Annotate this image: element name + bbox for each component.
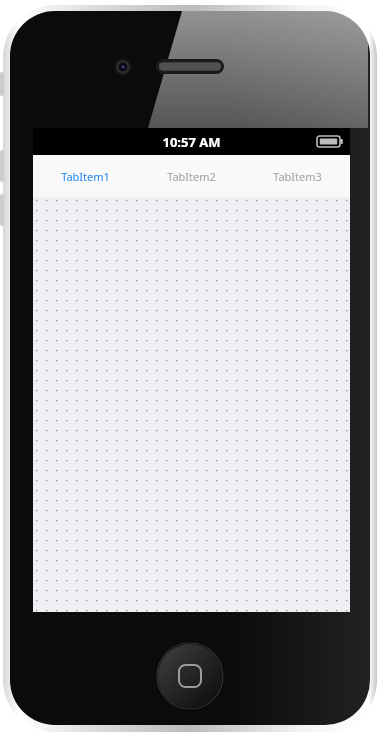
button[interactable]: TabItem3 [244,155,350,197]
staticText: TabItem2 [167,169,216,184]
button[interactable]: TabItem2 [138,155,244,197]
staticText: 10:57 AM [162,133,221,151]
other: Battery [317,135,343,148]
button[interactable]: TabItem1 [33,155,138,197]
staticText: TabItem3 [273,169,322,184]
staticText: TabItem1 [61,169,110,184]
